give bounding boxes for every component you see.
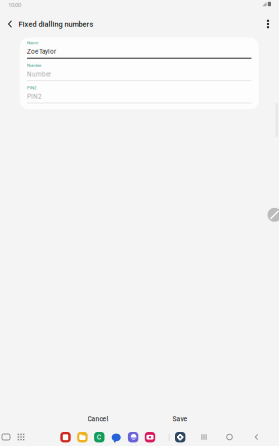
button[interactable]: Cancel — [70, 411, 126, 427]
button[interactable]: Settings — [175, 432, 185, 442]
button[interactable]: My Files — [77, 432, 88, 442]
button[interactable]: Home — [221, 430, 237, 444]
staticText: Number — [27, 63, 42, 68]
button[interactable]: Edit — [267, 208, 279, 222]
button[interactable]: Gallery — [145, 432, 155, 442]
button[interactable]: Save — [152, 411, 208, 427]
staticText: Save — [172, 415, 187, 423]
button[interactable]: Back — [248, 430, 264, 444]
button[interactable]: Messages — [111, 432, 121, 442]
staticText: PIN2 — [27, 85, 36, 90]
staticText: Cancel — [87, 415, 108, 423]
button[interactable]: Recent apps — [0, 430, 13, 444]
staticText: Name — [27, 40, 38, 45]
button[interactable]: App drawer — [14, 430, 28, 444]
button[interactable]: Notes — [60, 432, 71, 442]
button[interactable]: Calculator — [94, 432, 104, 442]
staticText: PIN2 — [27, 93, 42, 100]
staticText: C — [97, 433, 102, 441]
button[interactable]: Recents — [196, 430, 212, 444]
staticText: Zoe Taylor — [27, 48, 56, 55]
staticText: Fixed dialling numbers — [18, 20, 93, 29]
staticText: 10:00 — [8, 1, 21, 8]
staticText: Number — [27, 70, 51, 78]
button[interactable]: More options — [258, 13, 278, 35]
button[interactable]: Internet — [128, 432, 138, 442]
button[interactable]: Back — [0, 13, 20, 35]
